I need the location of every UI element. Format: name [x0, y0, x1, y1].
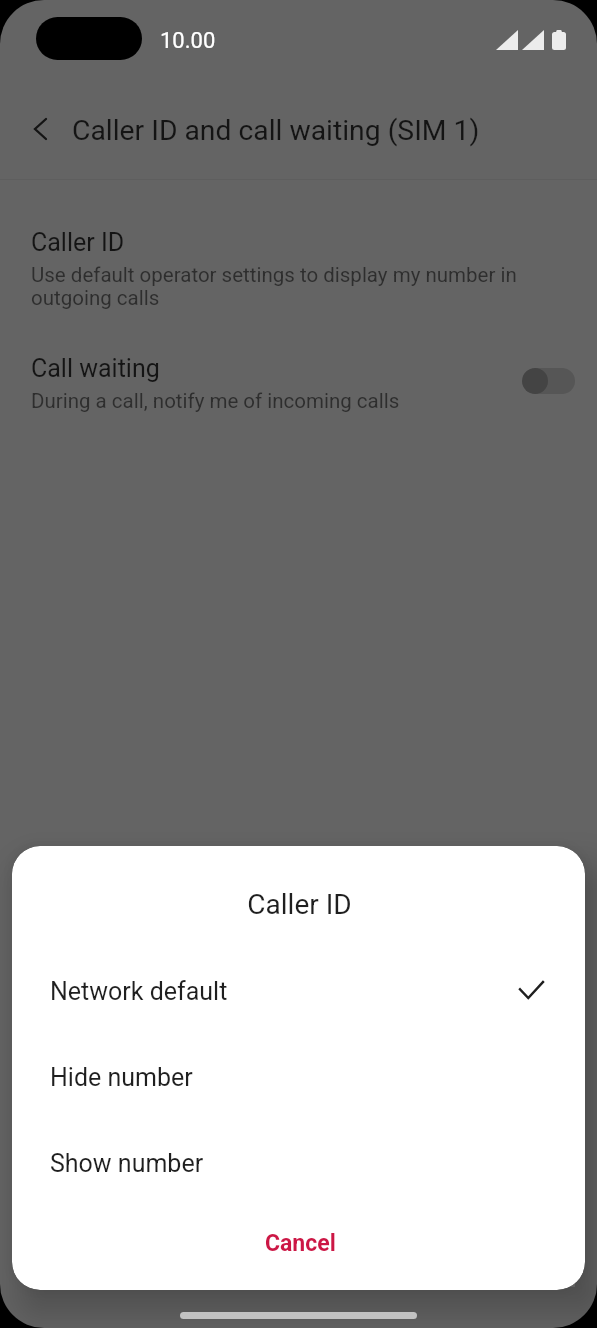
- staticText: Cancel: [265, 1230, 336, 1257]
- button[interactable]: Caller ID: [0, 218, 597, 322]
- button[interactable]: Cancel: [12, 1214, 585, 1272]
- button[interactable]: Network default: [12, 948, 585, 1034]
- staticText: Caller ID: [13, 888, 585, 921]
- button[interactable]: Hide number: [12, 1034, 585, 1120]
- button[interactable]: Call waiting: [0, 344, 597, 425]
- staticText: Caller ID and call waiting (SIM 1): [72, 114, 480, 147]
- staticText: 10.00: [160, 28, 216, 54]
- staticText: Caller ID: [31, 228, 125, 257]
- staticText: Network default: [50, 977, 228, 1006]
- button[interactable]: Show number: [12, 1120, 585, 1206]
- button[interactable]: Call waiting toggle: [522, 368, 575, 394]
- staticText: During a call, notify me of incoming cal…: [31, 389, 400, 413]
- staticText: Use default operator settings to display…: [31, 263, 566, 310]
- staticText: Show number: [50, 1149, 204, 1178]
- button[interactable]: Back: [16, 105, 64, 153]
- staticText: Hide number: [50, 1063, 193, 1092]
- staticText: Call waiting: [31, 354, 160, 383]
